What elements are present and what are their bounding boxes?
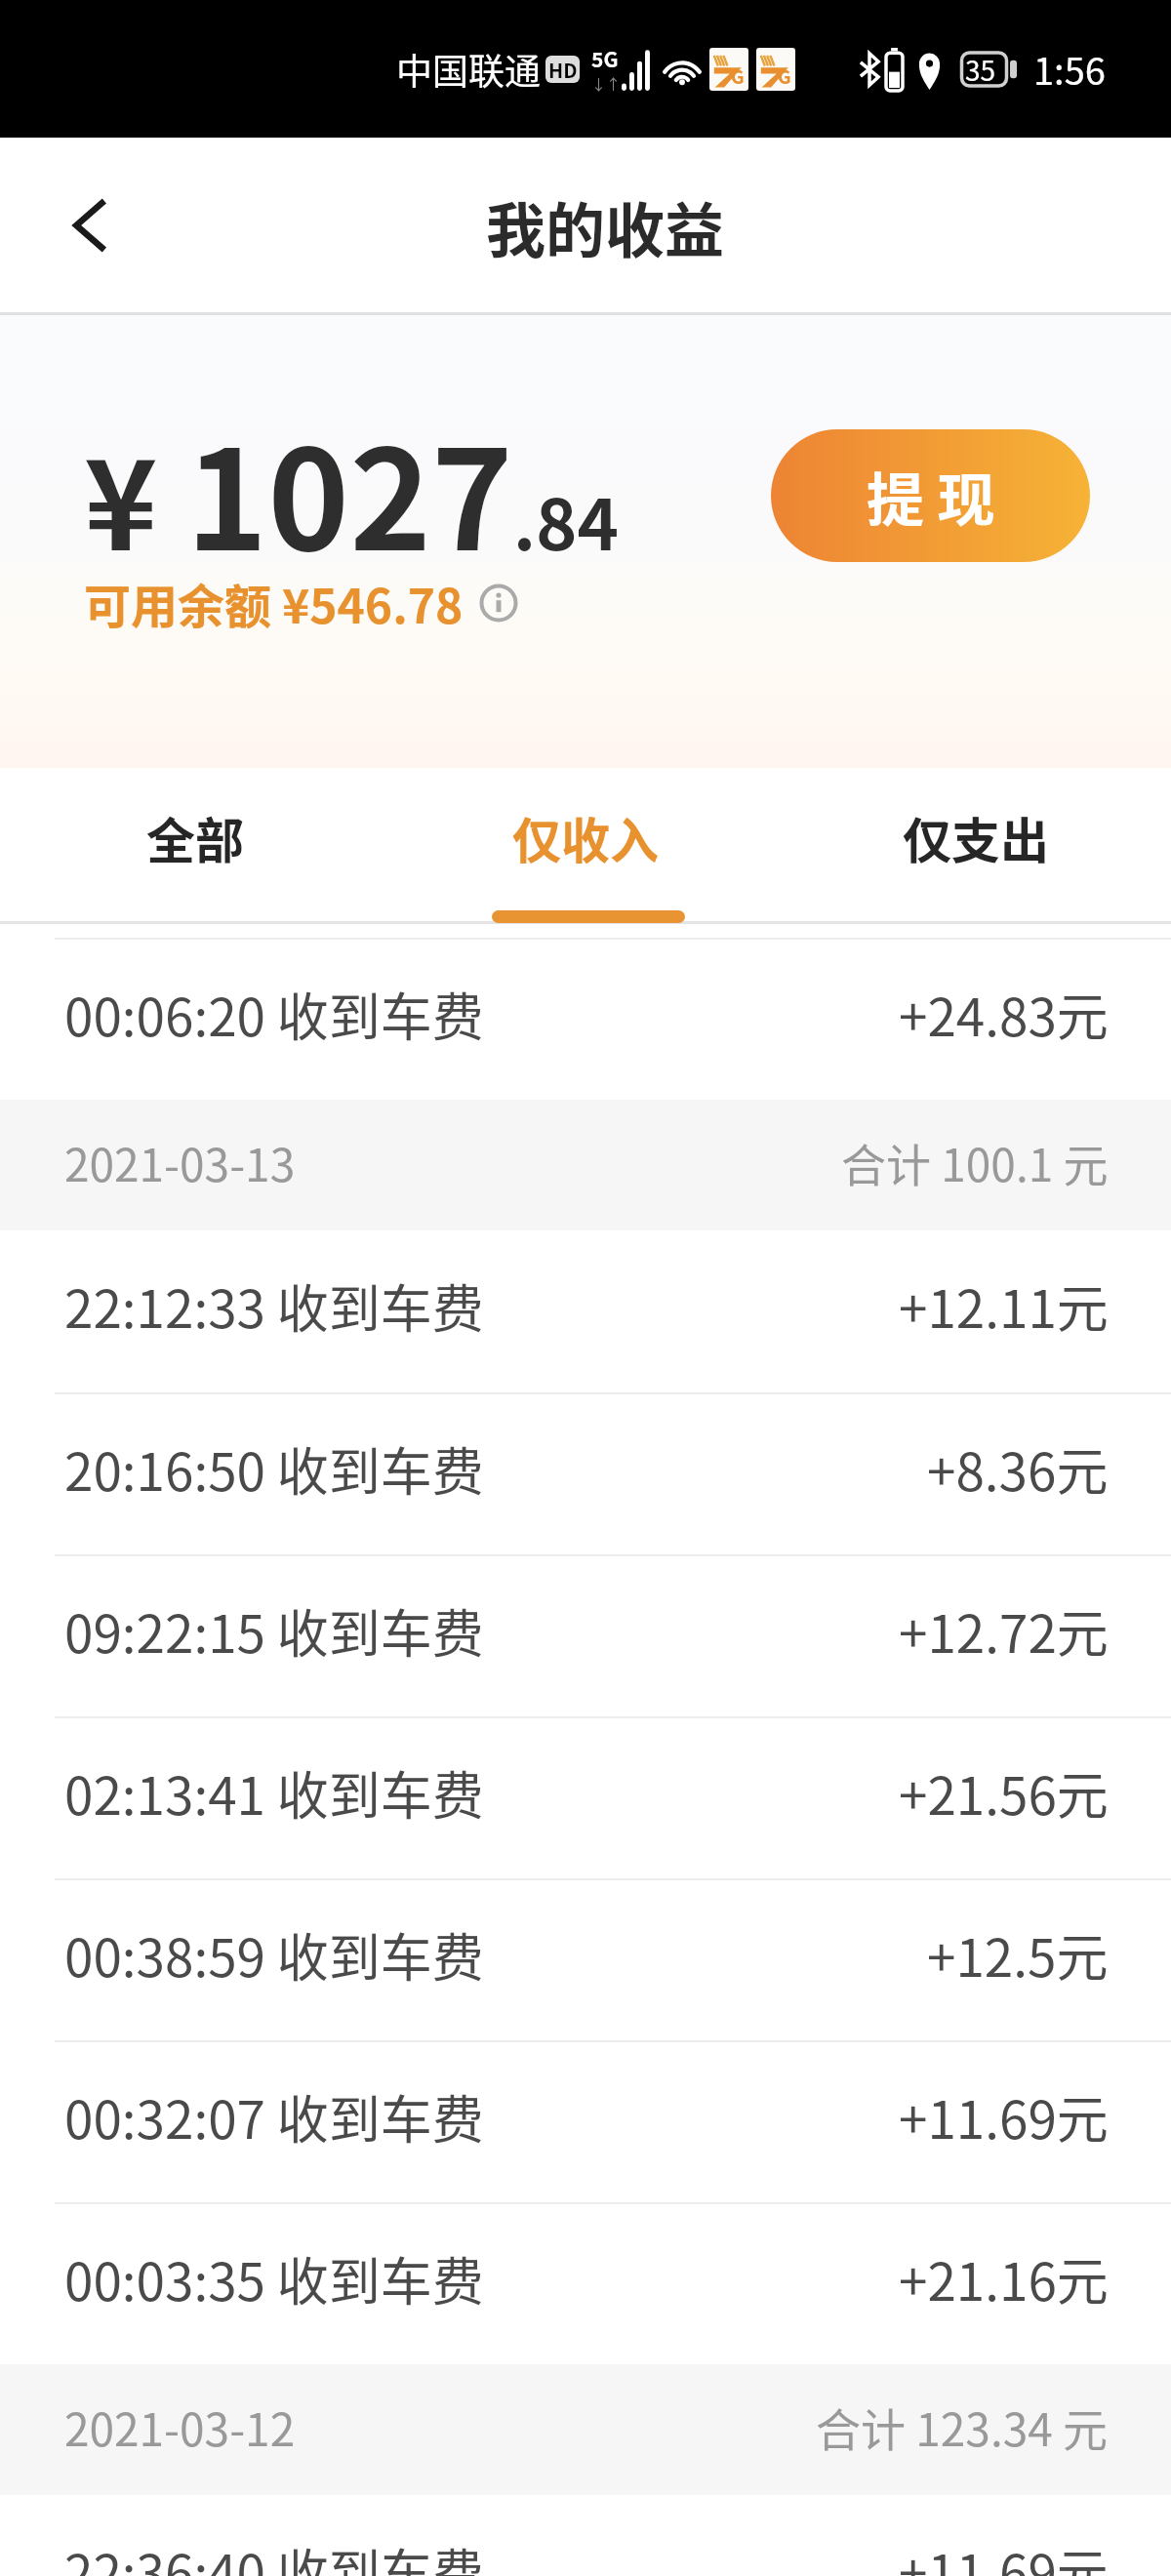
staticText: 00:38:59 收到车费 bbox=[64, 1917, 484, 1992]
staticText: +12.72元 bbox=[899, 1593, 1109, 1669]
staticText: +11.69元 bbox=[899, 2533, 1109, 2576]
staticText: ¥ 1027.84 bbox=[84, 389, 620, 590]
staticText: 02:13:41 收到车费 bbox=[64, 1755, 484, 1831]
staticText: 2021-03-12 bbox=[64, 2395, 296, 2460]
staticText: G bbox=[778, 62, 791, 90]
button[interactable]: Back bbox=[48, 184, 130, 266]
button[interactable]: 仅支出 bbox=[781, 768, 1171, 924]
button[interactable]: 提 现 bbox=[771, 429, 1090, 562]
staticText: 35 bbox=[965, 50, 996, 90]
button[interactable]: 22:12:33 收到车费 bbox=[0, 1230, 1171, 1392]
staticText: 仅收入 bbox=[512, 802, 659, 872]
staticText: +21.16元 bbox=[899, 2241, 1109, 2316]
staticText: +8.36元 bbox=[927, 1431, 1109, 1507]
staticText: 00:06:20 收到车费 bbox=[64, 977, 484, 1052]
button[interactable]: 00:03:35 收到车费 bbox=[0, 2202, 1171, 2364]
staticText: 可用余额 ¥546.78 bbox=[84, 569, 464, 637]
staticText: +12.5元 bbox=[927, 1917, 1109, 1992]
staticText: 09:22:15 收到车费 bbox=[64, 1593, 484, 1669]
staticText: 20:16:50 收到车费 bbox=[64, 1431, 484, 1507]
button[interactable]: 22:36:40 收到车费 bbox=[0, 2495, 1171, 2576]
staticText: +12.11元 bbox=[899, 1268, 1109, 1344]
button[interactable]: 全部 bbox=[0, 768, 390, 924]
staticText: 全部 bbox=[146, 802, 244, 872]
button[interactable]: Balance info bbox=[477, 582, 520, 624]
staticText: 1:56 bbox=[1033, 42, 1106, 96]
staticText: +11.69元 bbox=[899, 2079, 1109, 2154]
button[interactable]: 仅收入 bbox=[390, 768, 781, 924]
staticText: 22:36:40 收到车费 bbox=[64, 2533, 484, 2576]
staticText: G bbox=[731, 62, 745, 90]
staticText: 5G bbox=[591, 44, 619, 73]
button[interactable]: 00:32:07 收到车费 bbox=[0, 2040, 1171, 2202]
staticText: 00:32:07 收到车费 bbox=[64, 2079, 484, 2154]
button[interactable]: 00:38:59 收到车费 bbox=[0, 1878, 1171, 2040]
staticText: 22:12:33 收到车费 bbox=[64, 1268, 484, 1344]
staticText: HD bbox=[548, 56, 578, 83]
staticText: 提 现 bbox=[867, 455, 995, 538]
button[interactable]: 02:13:41 收到车费 bbox=[0, 1716, 1171, 1878]
button[interactable]: 20:16:50 收到车费 bbox=[0, 1392, 1171, 1554]
staticText: 合计 100.1 元 bbox=[841, 1130, 1109, 1195]
staticText: +24.83元 bbox=[899, 977, 1109, 1052]
staticText: 合计 123.34 元 bbox=[816, 2395, 1109, 2460]
staticText: 我的收益 bbox=[486, 183, 725, 269]
staticText: 仅支出 bbox=[903, 802, 1049, 872]
staticText: 00:03:35 收到车费 bbox=[64, 2241, 484, 2316]
button[interactable]: 00:06:20 收到车费 bbox=[0, 938, 1171, 1100]
staticText: 中国联通 bbox=[396, 43, 541, 96]
staticText: 2021-03-13 bbox=[64, 1130, 296, 1195]
staticText: +21.56元 bbox=[899, 1755, 1109, 1831]
staticText: ↓↑ bbox=[591, 73, 622, 95]
button[interactable]: 09:22:15 收到车费 bbox=[0, 1554, 1171, 1716]
